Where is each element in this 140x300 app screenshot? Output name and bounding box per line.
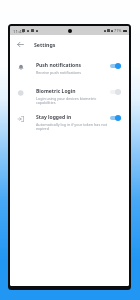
button[interactable]: Toggle on: [110, 63, 121, 69]
button[interactable]: Back: [16, 40, 24, 48]
button[interactable]: Toggle off: [110, 89, 121, 95]
staticText: 71%: [114, 28, 122, 33]
staticText: Login using your devices biometric capab…: [36, 96, 107, 106]
staticText: Stay logged in: [36, 114, 72, 121]
button[interactable]: Push notifications: [10, 60, 129, 86]
staticText: Push notifications: [36, 62, 82, 69]
staticText: Settings: [34, 41, 56, 48]
button[interactable]: Stay logged in: [10, 112, 129, 138]
button[interactable]: Toggle on: [110, 115, 121, 121]
staticText: 11:43: [13, 28, 24, 34]
staticText: Biometric Login: [36, 88, 76, 95]
staticText: Receive push notifications: [36, 70, 82, 75]
button[interactable]: Biometric Login: [10, 86, 129, 112]
staticText: Automatically log in if your token has n…: [36, 122, 107, 132]
